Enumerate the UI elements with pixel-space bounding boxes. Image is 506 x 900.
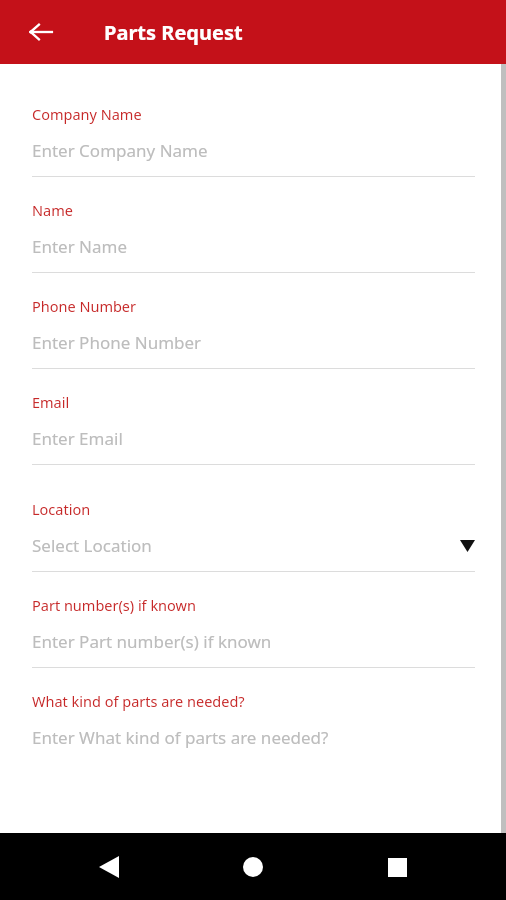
- staticText: Enter Company Name: [32, 139, 208, 162]
- staticText: Enter Email: [32, 427, 123, 450]
- button[interactable]: Part number(s) if known: [32, 572, 475, 668]
- staticText: Enter Name: [32, 235, 128, 258]
- button[interactable]: Recent apps: [362, 839, 432, 895]
- staticText: Enter What kind of parts are needed?: [32, 726, 329, 749]
- button[interactable]: What kind of parts are needed?: [32, 668, 475, 763]
- staticText: Part number(s) if known: [32, 595, 196, 615]
- staticText: What kind of parts are needed?: [32, 691, 245, 711]
- staticText: Enter Phone Number: [32, 331, 202, 354]
- staticText: Select Location: [32, 534, 152, 557]
- button[interactable]: Name: [32, 177, 475, 273]
- button[interactable]: Email: [32, 369, 475, 465]
- button[interactable]: Phone Number: [32, 273, 475, 369]
- staticText: Company Name: [32, 104, 142, 124]
- button[interactable]: Back: [17, 8, 65, 56]
- staticText: Phone Number: [32, 296, 137, 316]
- button[interactable]: Back: [74, 839, 144, 895]
- button[interactable]: Company Name: [32, 64, 475, 177]
- staticText: Name: [32, 200, 73, 220]
- staticText: Email: [32, 392, 70, 412]
- staticText: Parts Request: [104, 19, 243, 46]
- button[interactable]: Location: [32, 465, 475, 572]
- staticText: Enter Part number(s) if known: [32, 630, 272, 653]
- staticText: Location: [32, 499, 91, 519]
- button[interactable]: Home: [218, 839, 288, 895]
